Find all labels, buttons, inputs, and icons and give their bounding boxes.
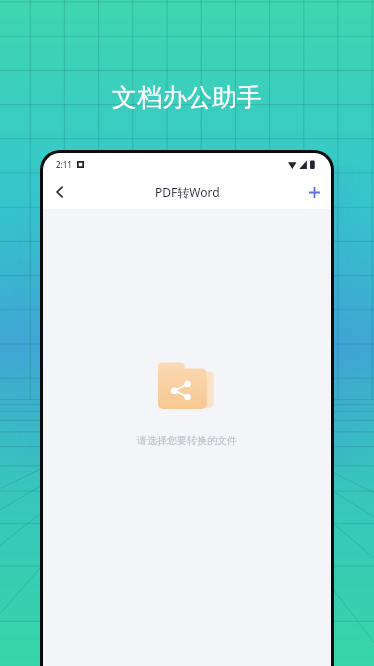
staticText: 2:11 [56,159,72,170]
staticText: 文档办公助手 [112,82,262,113]
staticText: 请选择您要转换的文件 [137,434,237,447]
button[interactable]: Back [43,175,77,209]
button[interactable]: Select file [158,360,216,412]
staticText: PDF转Word [155,184,220,200]
button[interactable]: Add [297,175,331,209]
